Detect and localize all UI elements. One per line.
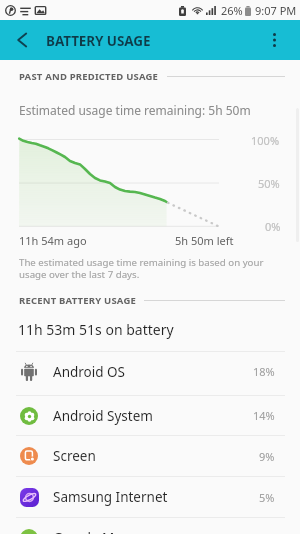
- button[interactable]: Google Maps: [0, 518, 300, 534]
- staticText: Samsung Internet: [53, 488, 168, 506]
- staticText: Android System: [53, 407, 153, 425]
- staticText: 5h 50m left: [175, 233, 234, 248]
- staticText: 0%: [265, 219, 281, 234]
- staticText: 50%: [258, 176, 280, 191]
- staticText: Google Maps: [53, 529, 137, 534]
- staticText: BATTERY USAGE: [46, 32, 151, 50]
- staticText: The estimated usage time remaining is ba…: [19, 256, 266, 281]
- staticText: PAST AND PREDICTED USAGE: [19, 70, 159, 83]
- staticText: 14%: [253, 408, 275, 423]
- staticText: 9:07 PM: [255, 3, 297, 18]
- staticText: 11h 54m ago: [19, 233, 87, 248]
- button[interactable]: Android System: [0, 396, 300, 435]
- staticText: Screen: [53, 447, 96, 465]
- button[interactable]: Screen: [0, 436, 300, 476]
- staticText: 100%: [251, 133, 280, 148]
- button[interactable]: Samsung Internet: [0, 477, 300, 517]
- staticText: 26%: [221, 3, 243, 18]
- staticText: 18%: [253, 364, 275, 379]
- staticText: Android OS: [53, 363, 125, 381]
- button[interactable]: Navigate up: [0, 20, 40, 60]
- staticText: 11h 53m 51s on battery: [18, 320, 174, 339]
- staticText: 5%: [259, 490, 275, 505]
- staticText: 9%: [259, 449, 275, 464]
- staticText: RECENT BATTERY USAGE: [19, 294, 136, 307]
- button[interactable]: Android OS: [0, 352, 300, 395]
- staticText: Estimated usage time remaining: 5h 50m: [19, 102, 251, 118]
- button[interactable]: More options: [252, 20, 300, 60]
